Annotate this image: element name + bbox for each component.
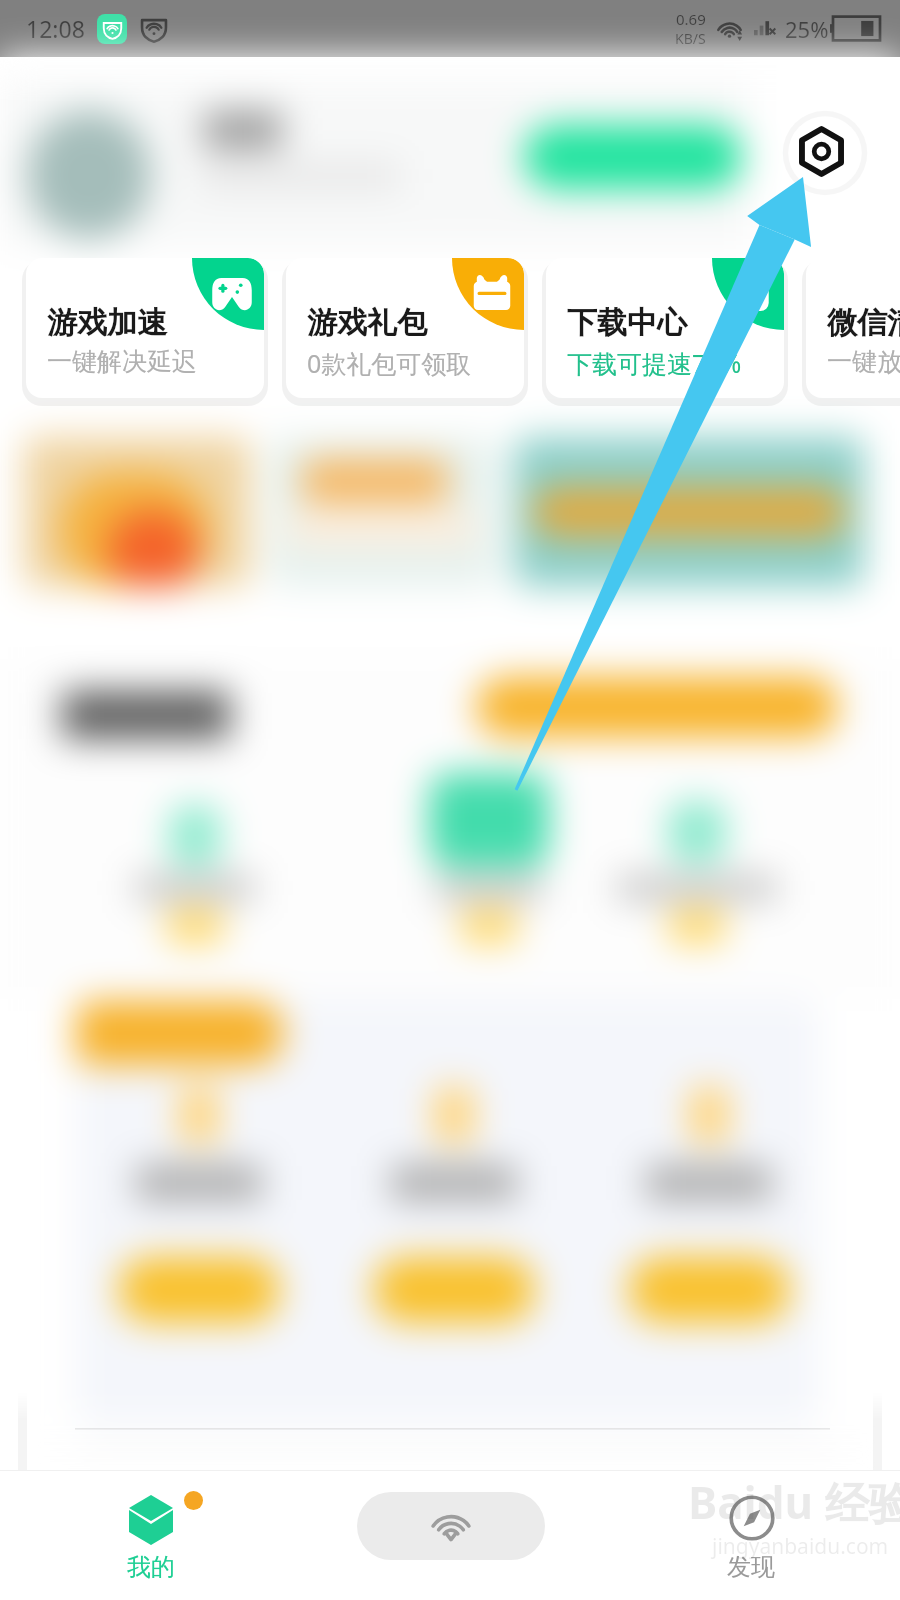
button[interactable]: 我的	[80, 1470, 222, 1600]
staticText: 微信清理	[827, 304, 900, 342]
staticText: 25%	[785, 14, 829, 44]
button[interactable]: 游戏加速	[26, 258, 264, 398]
staticText: KB/S	[675, 29, 706, 48]
staticText: 发现	[727, 1552, 775, 1582]
button[interactable]: 下载中心	[546, 258, 784, 398]
staticText: 我的	[127, 1552, 175, 1582]
staticText: 下载可提速70%	[567, 346, 742, 380]
button[interactable]: 微信清理	[806, 258, 900, 398]
button[interactable]: WiFi	[357, 1492, 545, 1560]
staticText: 一键放心清理	[827, 346, 900, 377]
staticText: Baidu 经验	[688, 1472, 900, 1532]
staticText: 游戏加速	[47, 304, 167, 342]
staticText: 一键解决延迟	[47, 346, 197, 377]
button[interactable]: Settings	[779, 107, 871, 199]
button[interactable]: 游戏礼包	[286, 258, 524, 398]
staticText: jingyanbaidu.com	[712, 1532, 889, 1561]
staticText: 下载中心	[567, 304, 687, 342]
staticText: 0.69	[676, 9, 706, 29]
staticText: 12:08	[26, 13, 85, 44]
staticText: 游戏礼包	[307, 304, 427, 342]
button[interactable]: 发现	[680, 1470, 822, 1600]
staticText: 0款礼包可领取	[307, 346, 472, 380]
